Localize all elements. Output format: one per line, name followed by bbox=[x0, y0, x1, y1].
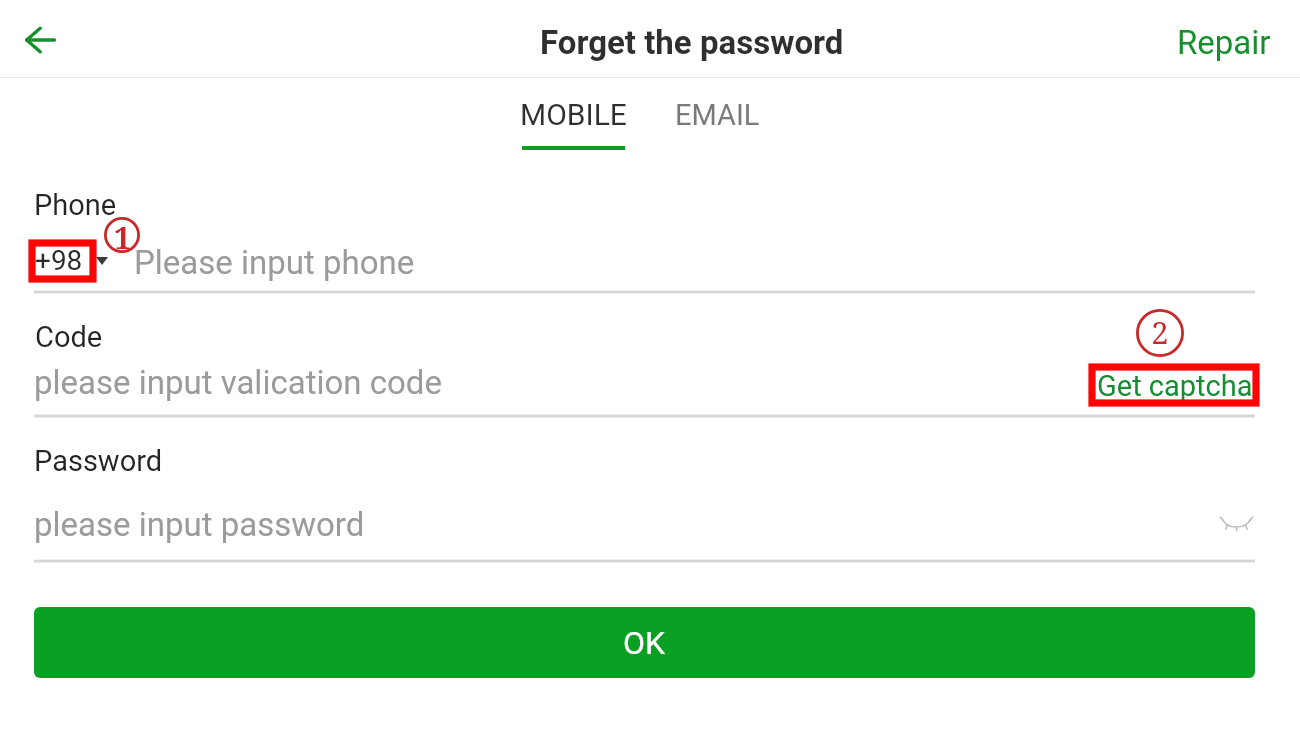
staticText: EMAIL bbox=[675, 98, 760, 132]
staticText: OK bbox=[623, 624, 666, 662]
staticText: please input password bbox=[34, 505, 365, 544]
button[interactable]: Repair bbox=[1157, 6, 1279, 72]
button[interactable]: MOBILE bbox=[494, 86, 651, 152]
staticText: Please input phone bbox=[134, 243, 415, 282]
staticText: Code bbox=[35, 320, 103, 354]
staticText: Password bbox=[34, 444, 163, 478]
button[interactable]: +98 bbox=[28, 239, 112, 283]
button[interactable]: OK bbox=[34, 607, 1255, 678]
staticText: Get captcha bbox=[1097, 369, 1253, 403]
staticText: Repair bbox=[1177, 23, 1271, 62]
button[interactable]: EMAIL bbox=[649, 86, 783, 152]
staticText: +98 bbox=[35, 244, 83, 277]
staticText: Phone bbox=[34, 188, 117, 222]
button[interactable]: Show password bbox=[1206, 498, 1266, 548]
staticText: 1 bbox=[114, 217, 131, 253]
staticText: please input valication code bbox=[34, 363, 442, 402]
staticText: Forget the password bbox=[540, 23, 844, 62]
button[interactable]: Back bbox=[6, 12, 74, 68]
button[interactable]: Get captcha bbox=[1079, 358, 1269, 412]
staticText: MOBILE bbox=[520, 97, 627, 132]
staticText: 2 bbox=[1151, 311, 1169, 353]
